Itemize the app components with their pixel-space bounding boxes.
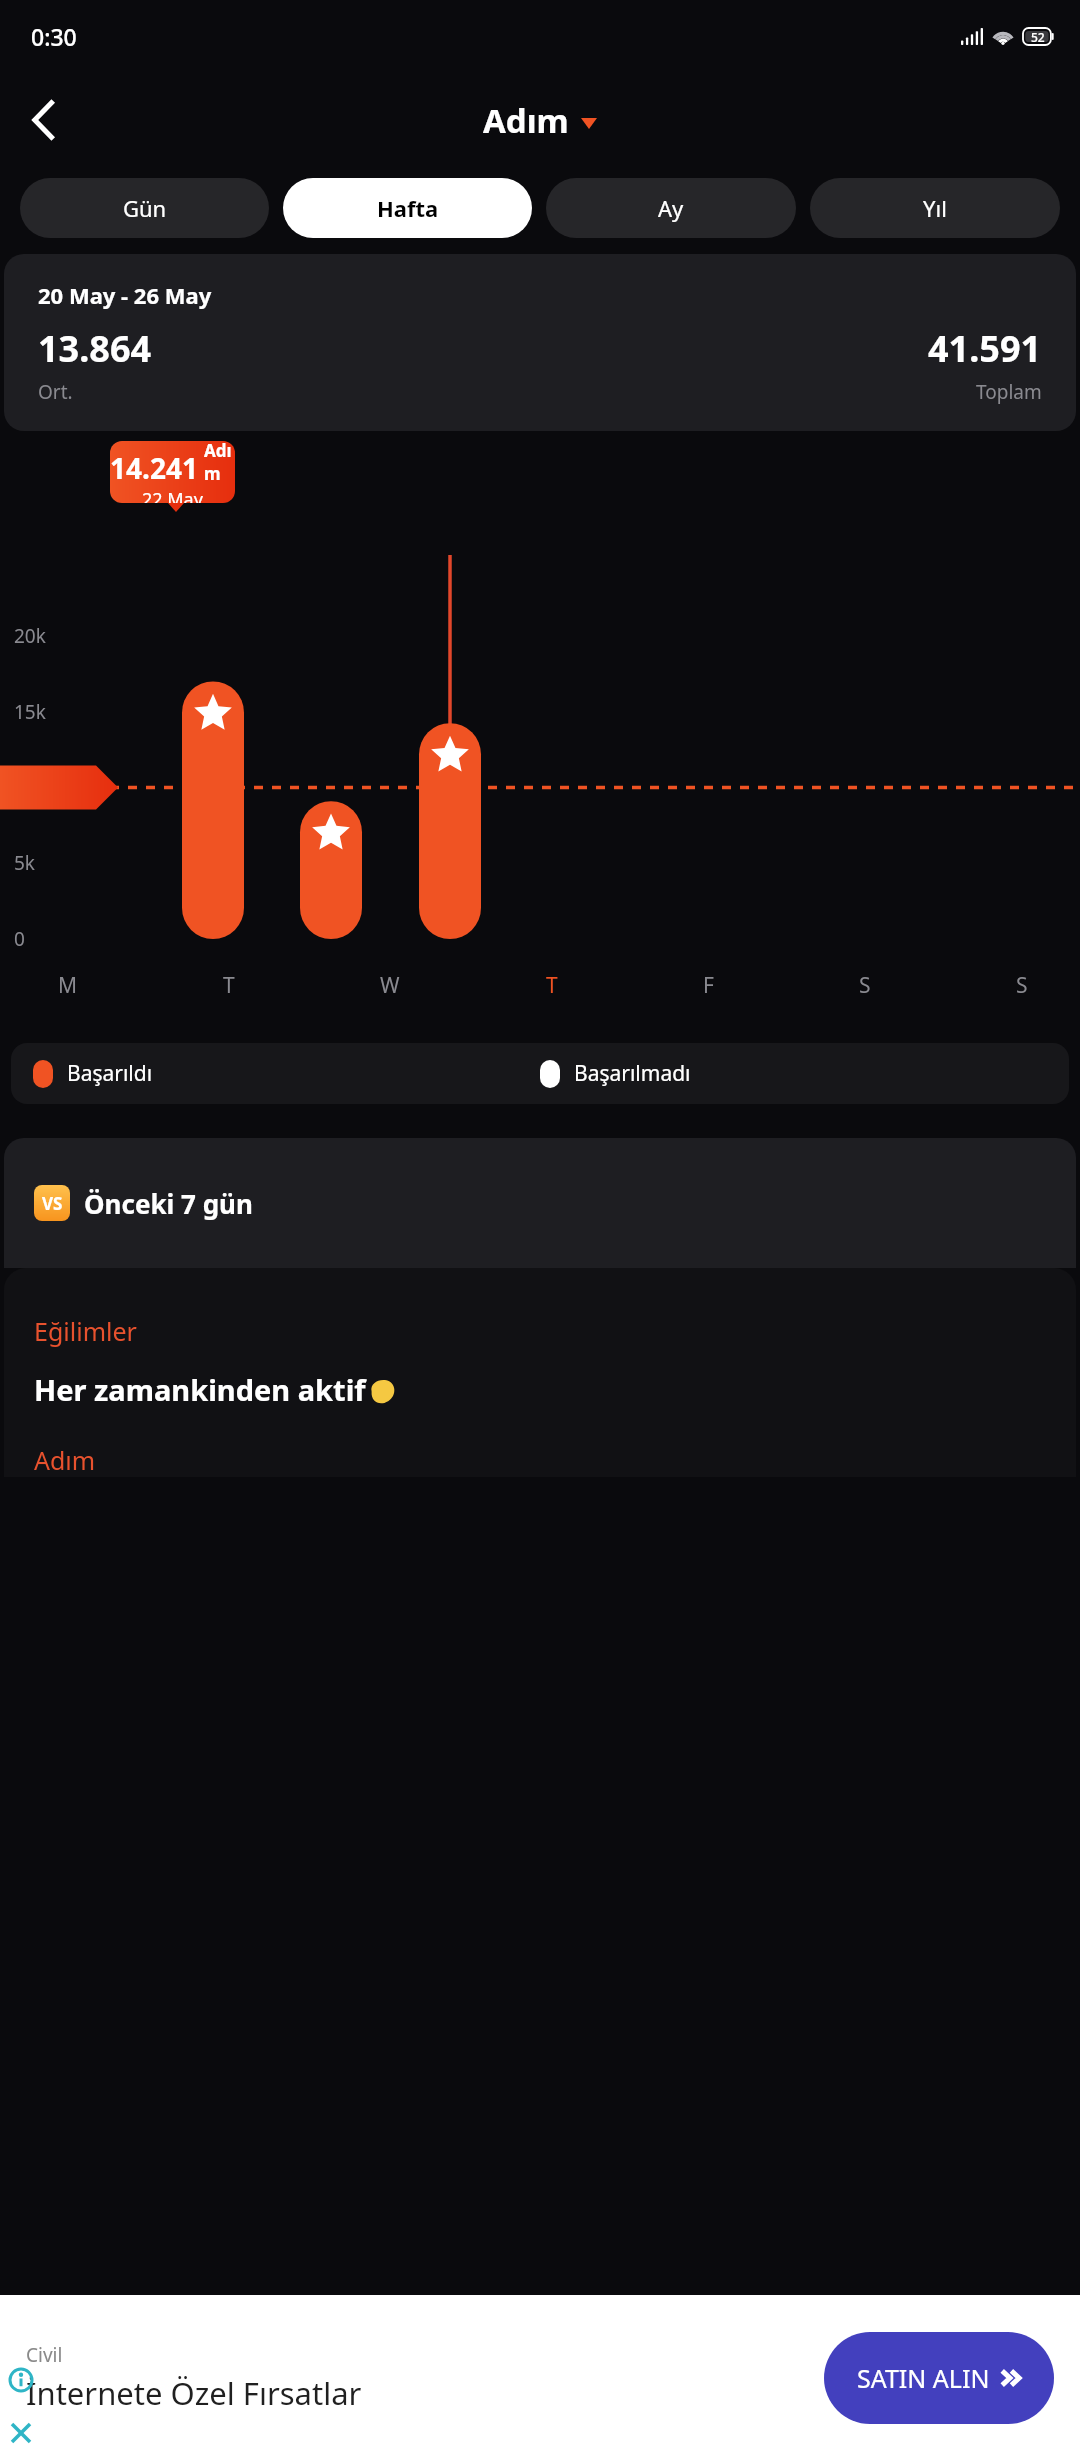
staticText: Gün (123, 193, 167, 223)
button[interactable]: Adım (483, 98, 597, 143)
button[interactable]: Back (12, 88, 76, 152)
staticText: 41.591 (928, 324, 1042, 373)
staticText: 20k (14, 623, 46, 649)
staticText: İnternete Özel Fırsatlar (26, 2372, 362, 2414)
button[interactable]: Eğilimler (4, 1268, 1076, 1477)
staticText: Her zamankinden aktif (34, 1370, 366, 1409)
button[interactable]: Yıl (810, 178, 1060, 238)
staticText: Civil (26, 2342, 63, 2368)
staticText: W (380, 971, 400, 1000)
staticText: 14.241 (110, 449, 198, 487)
staticText: T (223, 971, 235, 1000)
staticText: 0 (14, 926, 25, 952)
staticText: S (859, 971, 871, 1000)
staticText: 20 May - 26 May (38, 280, 212, 310)
staticText: Önceki 7 gün (84, 1186, 253, 1221)
button[interactable]: 14.241 (110, 441, 235, 503)
staticText: F (703, 971, 714, 1000)
button[interactable]: Ay (546, 178, 796, 238)
staticText: Adım (204, 441, 235, 485)
staticText: Başarılmadı (574, 1059, 691, 1088)
staticText: Ort. (38, 379, 73, 405)
staticText: 52 (1031, 29, 1045, 45)
staticText: Başarıldı (67, 1059, 153, 1088)
staticText: Yıl (923, 193, 947, 223)
staticText: Adım (34, 1443, 96, 1477)
staticText: 5k (14, 850, 36, 876)
staticText: T (546, 971, 558, 1000)
staticText: 15k (14, 699, 46, 725)
staticText: M (58, 971, 78, 1000)
staticText: 0:30 (31, 21, 77, 52)
staticText: Toplam (976, 379, 1042, 405)
button[interactable]: Ad info (4, 2363, 38, 2397)
staticText: Adım (483, 98, 569, 143)
button[interactable]: Hafta (283, 178, 532, 238)
button[interactable]: Close ad (4, 2416, 38, 2450)
button[interactable]: SATIN ALIN (824, 2332, 1054, 2424)
staticText: 13.864 (38, 324, 152, 373)
button[interactable]: 20 May - 26 May (4, 254, 1076, 431)
staticText: 22 May (142, 487, 203, 503)
button[interactable]: Başarıldı (11, 1043, 1069, 1104)
staticText: Ay (658, 193, 684, 223)
staticText: Hafta (377, 193, 439, 223)
staticText: SATIN ALIN (857, 2361, 990, 2395)
button[interactable]: VS (4, 1138, 1076, 1268)
button[interactable]: Gün (20, 178, 269, 238)
staticText: VS (42, 1192, 63, 1215)
staticText: S (1016, 971, 1028, 1000)
staticText: Eğilimler (34, 1314, 137, 1348)
